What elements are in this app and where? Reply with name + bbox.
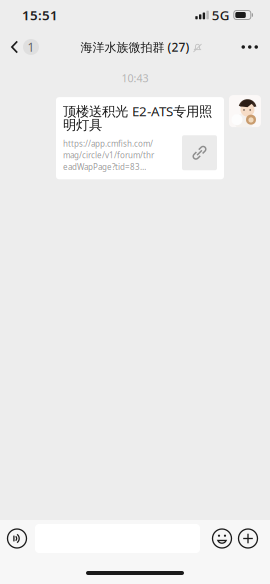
- staticText: 5G: [212, 6, 230, 24]
- staticText: https://app.cmfish.com/: [63, 138, 153, 149]
- staticText: 海洋水族微拍群 (27): [80, 39, 189, 55]
- button[interactable]: Voice input: [4, 520, 30, 556]
- button[interactable]: Back: [0, 30, 45, 64]
- staticText: 1: [27, 39, 34, 55]
- staticText: 10:43: [121, 71, 148, 85]
- staticText: 顶楼送积光 E2-ATS专用照: [63, 102, 212, 120]
- button[interactable]: More: [233, 30, 270, 64]
- staticText: 15:51: [22, 6, 58, 24]
- staticText: eadWapPage?tid=83…: [63, 161, 146, 172]
- button[interactable]: More options: [235, 520, 261, 556]
- button[interactable]: 顶楼送积光 E2-ATS专用照: [56, 97, 224, 179]
- button[interactable]: Emoji: [209, 520, 235, 556]
- staticText: mag/circle/v1/forum/thr: [63, 150, 154, 160]
- staticText: 明灯具: [63, 117, 102, 133]
